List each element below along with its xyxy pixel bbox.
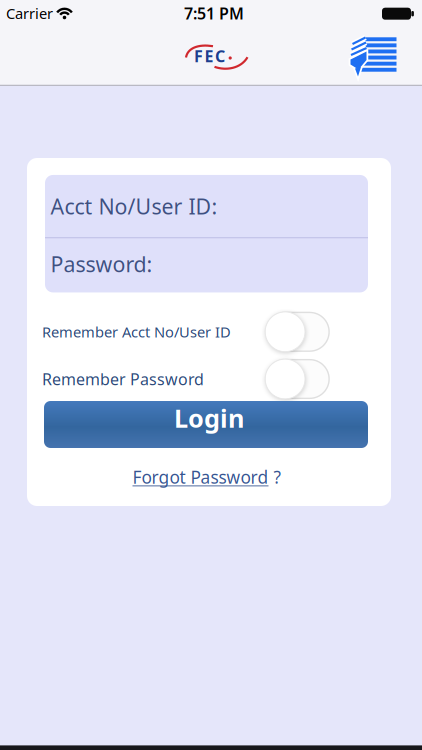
staticText: Forgot Password ? bbox=[132, 465, 281, 488]
staticText: FEC bbox=[194, 45, 225, 67]
button[interactable]: Remember Password bbox=[265, 359, 330, 399]
button[interactable]: Forgot Password ? bbox=[132, 465, 281, 488]
button[interactable]: Applications bbox=[343, 31, 401, 83]
staticText: Carrier bbox=[6, 4, 53, 23]
button[interactable]: Acct No/User ID: bbox=[45, 175, 368, 237]
button[interactable]: Password: bbox=[45, 237, 368, 291]
button[interactable]: Remember Acct No/User ID bbox=[265, 312, 330, 352]
staticText: 7:51 PM bbox=[184, 3, 244, 24]
button[interactable]: Login bbox=[44, 401, 368, 448]
staticText: Acct No/User ID: bbox=[50, 192, 217, 220]
staticText: Password: bbox=[50, 250, 152, 278]
staticText: Remember Password bbox=[42, 368, 204, 390]
staticText: Login bbox=[174, 401, 244, 435]
staticText: Remember Acct No/User ID bbox=[42, 322, 231, 342]
